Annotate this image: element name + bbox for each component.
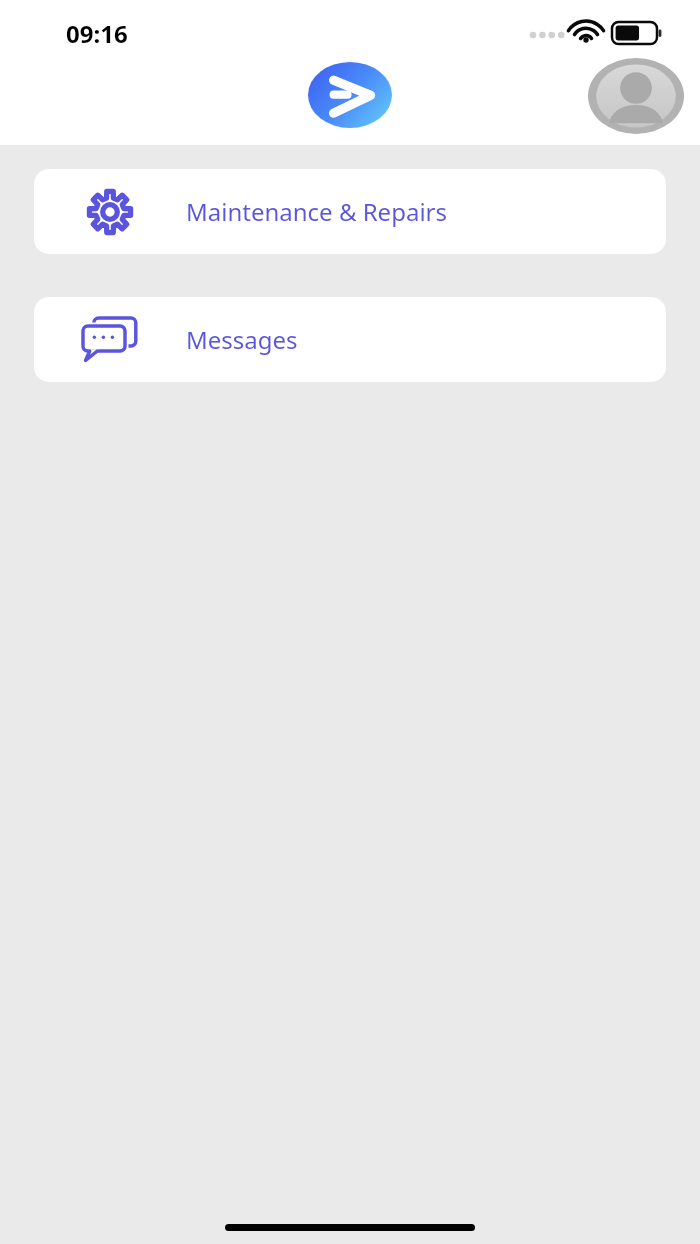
staticText: Messages xyxy=(186,323,298,356)
button[interactable]: Profile xyxy=(588,58,684,134)
staticText: 09:16 xyxy=(66,17,128,50)
button[interactable]: Messages xyxy=(34,297,666,382)
staticText: Maintenance & Repairs xyxy=(186,195,447,228)
button[interactable]: Maintenance & Repairs xyxy=(34,169,666,254)
other: App logo xyxy=(308,62,392,128)
